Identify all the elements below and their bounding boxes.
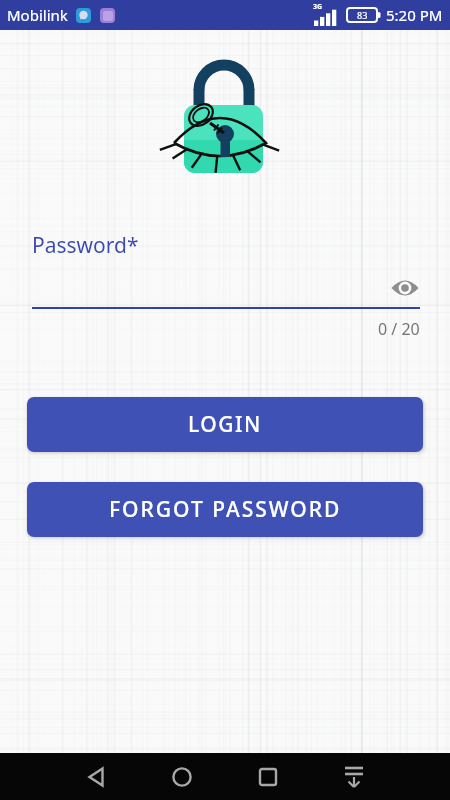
button[interactable] — [53, 753, 139, 800]
button[interactable] — [139, 753, 225, 800]
staticText: 0 / 20 — [378, 318, 420, 340]
staticText: 83 — [357, 9, 368, 21]
staticText: 5:20 PM — [386, 5, 443, 25]
staticText: 3G — [313, 2, 323, 12]
button[interactable] — [225, 753, 311, 800]
staticText: Mobilink — [7, 5, 68, 25]
button[interactable] — [311, 753, 397, 800]
staticText: FORGOT PASSWORD — [109, 495, 342, 524]
staticText: LOGIN — [188, 410, 262, 439]
button[interactable]: LOGIN — [27, 397, 423, 452]
staticText: Password* — [32, 231, 139, 260]
button[interactable]: FORGOT PASSWORD — [27, 482, 423, 537]
